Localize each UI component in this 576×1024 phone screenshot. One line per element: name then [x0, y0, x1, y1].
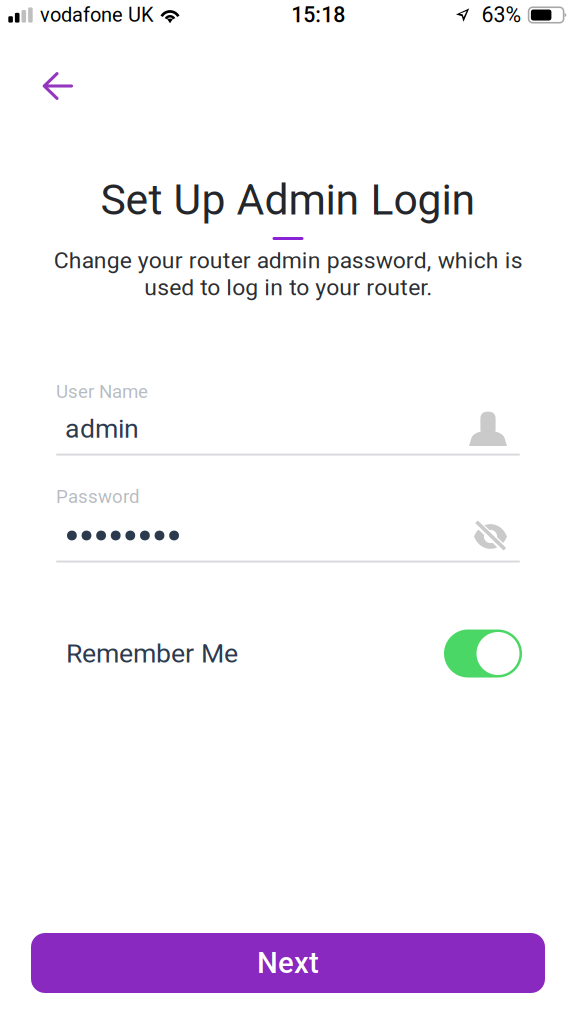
- staticText: Change your router admin password, which…: [53, 247, 522, 301]
- staticText: Remember Me: [66, 638, 238, 669]
- staticText: Set Up Admin Login: [100, 175, 475, 225]
- button[interactable]: Remember Me: [0, 629, 576, 677]
- staticText: Next: [257, 946, 319, 980]
- staticText: Password: [56, 486, 140, 507]
- staticText: User Name: [56, 381, 148, 403]
- staticText: vodafone UK: [40, 3, 154, 27]
- staticText: admin: [65, 413, 139, 444]
- staticText: 15:18: [291, 2, 345, 27]
- button[interactable]: Show password: [473, 515, 520, 555]
- button[interactable]: Back: [0, 58, 89, 114]
- button[interactable]: Next: [31, 933, 545, 993]
- staticText: 63%: [482, 2, 522, 27]
